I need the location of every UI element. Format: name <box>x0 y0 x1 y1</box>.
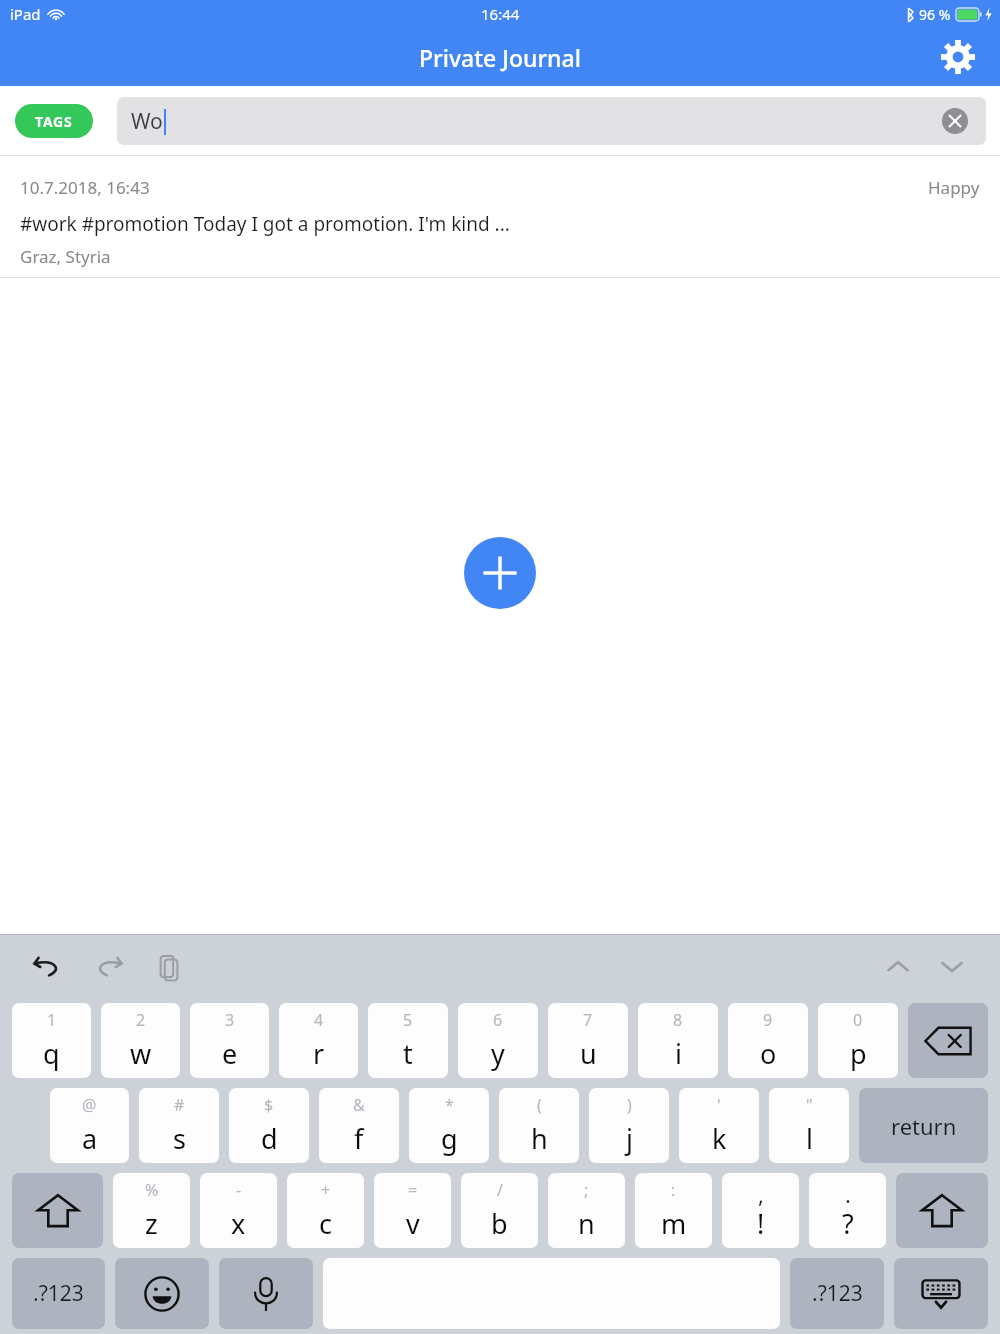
button[interactable]: ) <box>589 1088 669 1163</box>
button[interactable]: 1 <box>12 1003 91 1078</box>
staticText: #work #promotion Today I got a promotion… <box>20 211 510 237</box>
staticText: Graz, Styria <box>20 245 111 268</box>
staticText: ( <box>537 1094 542 1116</box>
staticText: : <box>671 1179 676 1201</box>
staticText: v <box>406 1205 420 1242</box>
button[interactable]: Redo <box>88 946 130 988</box>
staticText: - <box>236 1179 242 1201</box>
staticText: 6 <box>493 1009 503 1031</box>
button[interactable]: .?123 <box>12 1258 105 1329</box>
staticText: d <box>261 1120 278 1157</box>
button[interactable]: Previous <box>878 947 918 987</box>
button[interactable]: 7 <box>548 1003 628 1078</box>
staticText: ! <box>757 1205 765 1242</box>
staticText: i <box>675 1035 682 1072</box>
button[interactable]: % <box>113 1173 190 1248</box>
button[interactable]: Next <box>932 947 972 987</box>
staticText: a <box>82 1120 98 1157</box>
button[interactable]: 9 <box>728 1003 808 1078</box>
staticText: 16:44 <box>481 4 520 24</box>
staticText: b <box>491 1205 508 1242</box>
staticText: ) <box>627 1094 632 1116</box>
staticText: 0 <box>853 1009 863 1031</box>
staticText: $ <box>264 1094 274 1116</box>
button[interactable]: + <box>287 1173 364 1248</box>
staticText: p <box>850 1035 867 1072</box>
staticText: # <box>174 1094 185 1116</box>
button[interactable]: " <box>769 1088 849 1163</box>
button[interactable]: Paste <box>148 946 190 988</box>
button[interactable]: 3 <box>190 1003 269 1078</box>
staticText: * <box>445 1094 454 1116</box>
button[interactable]: ' <box>679 1088 759 1163</box>
button[interactable]: Settings <box>938 37 978 77</box>
button[interactable]: Shift <box>12 1173 103 1248</box>
staticText: r <box>313 1035 325 1072</box>
button[interactable]: return <box>859 1088 988 1163</box>
button[interactable]: Emoji <box>115 1258 209 1329</box>
button[interactable]: ; <box>548 1173 625 1248</box>
button[interactable]: * <box>409 1088 489 1163</box>
staticText: z <box>145 1205 158 1242</box>
staticText: " <box>806 1094 813 1116</box>
staticText: 3 <box>225 1009 235 1031</box>
staticText: Happy <box>928 176 980 199</box>
staticText: k <box>712 1120 727 1157</box>
button[interactable]: Add entry <box>464 537 536 609</box>
staticText: / <box>497 1179 503 1201</box>
button[interactable]: Delete <box>908 1003 988 1078</box>
staticText: 96 % <box>919 5 951 24</box>
button[interactable]: ( <box>499 1088 579 1163</box>
button[interactable]: @ <box>50 1088 129 1163</box>
staticText: = <box>408 1179 418 1201</box>
button[interactable]: 4 <box>279 1003 358 1078</box>
staticText: ; <box>584 1179 589 1201</box>
staticText: return <box>891 1111 957 1141</box>
button[interactable]: .?123 <box>790 1258 884 1329</box>
staticText: o <box>760 1035 777 1072</box>
button[interactable]: 6 <box>458 1003 538 1078</box>
staticText: Wo <box>131 107 163 136</box>
button[interactable]: Shift <box>896 1173 988 1248</box>
button[interactable]: 0 <box>818 1003 898 1078</box>
staticText: w <box>130 1035 152 1072</box>
button[interactable]: Dictate <box>219 1258 313 1329</box>
staticText: 7 <box>583 1009 593 1031</box>
button[interactable]: 2 <box>101 1003 180 1078</box>
staticText: c <box>319 1205 332 1242</box>
staticText: q <box>43 1035 60 1072</box>
button[interactable]: , <box>722 1173 799 1248</box>
staticText: j <box>626 1120 633 1157</box>
staticText: @ <box>82 1094 97 1116</box>
button[interactable]: Hide keyboard <box>894 1258 988 1329</box>
staticText: iPad <box>10 4 41 24</box>
staticText: , <box>758 1179 764 1209</box>
button[interactable]: 8 <box>638 1003 718 1078</box>
button[interactable]: TAGS <box>15 104 93 138</box>
button[interactable]: 5 <box>368 1003 448 1078</box>
staticText: x <box>231 1205 246 1242</box>
button[interactable]: : <box>635 1173 712 1248</box>
staticText: TAGS <box>35 112 73 131</box>
button[interactable]: Clear text <box>942 108 968 134</box>
staticText: 2 <box>136 1009 146 1031</box>
staticText: . <box>845 1179 851 1209</box>
button[interactable]: . <box>809 1173 886 1248</box>
staticText: 8 <box>673 1009 683 1031</box>
staticText: Private Journal <box>419 42 581 73</box>
button[interactable]: Undo <box>26 946 68 988</box>
staticText: 10.7.2018, 16:43 <box>20 176 150 199</box>
staticText: % <box>145 1179 159 1201</box>
staticText: f <box>354 1120 364 1157</box>
button[interactable]: = <box>374 1173 451 1248</box>
button[interactable]: / <box>461 1173 538 1248</box>
staticText: .?123 <box>33 1279 84 1308</box>
button[interactable]: # <box>139 1088 219 1163</box>
staticText: 4 <box>314 1009 324 1031</box>
button[interactable]: 10.7.2018, 16:43 <box>0 155 1000 278</box>
button[interactable]: & <box>319 1088 399 1163</box>
button[interactable]: Wo <box>117 97 986 145</box>
button[interactable]: $ <box>229 1088 309 1163</box>
button[interactable]: - <box>200 1173 277 1248</box>
